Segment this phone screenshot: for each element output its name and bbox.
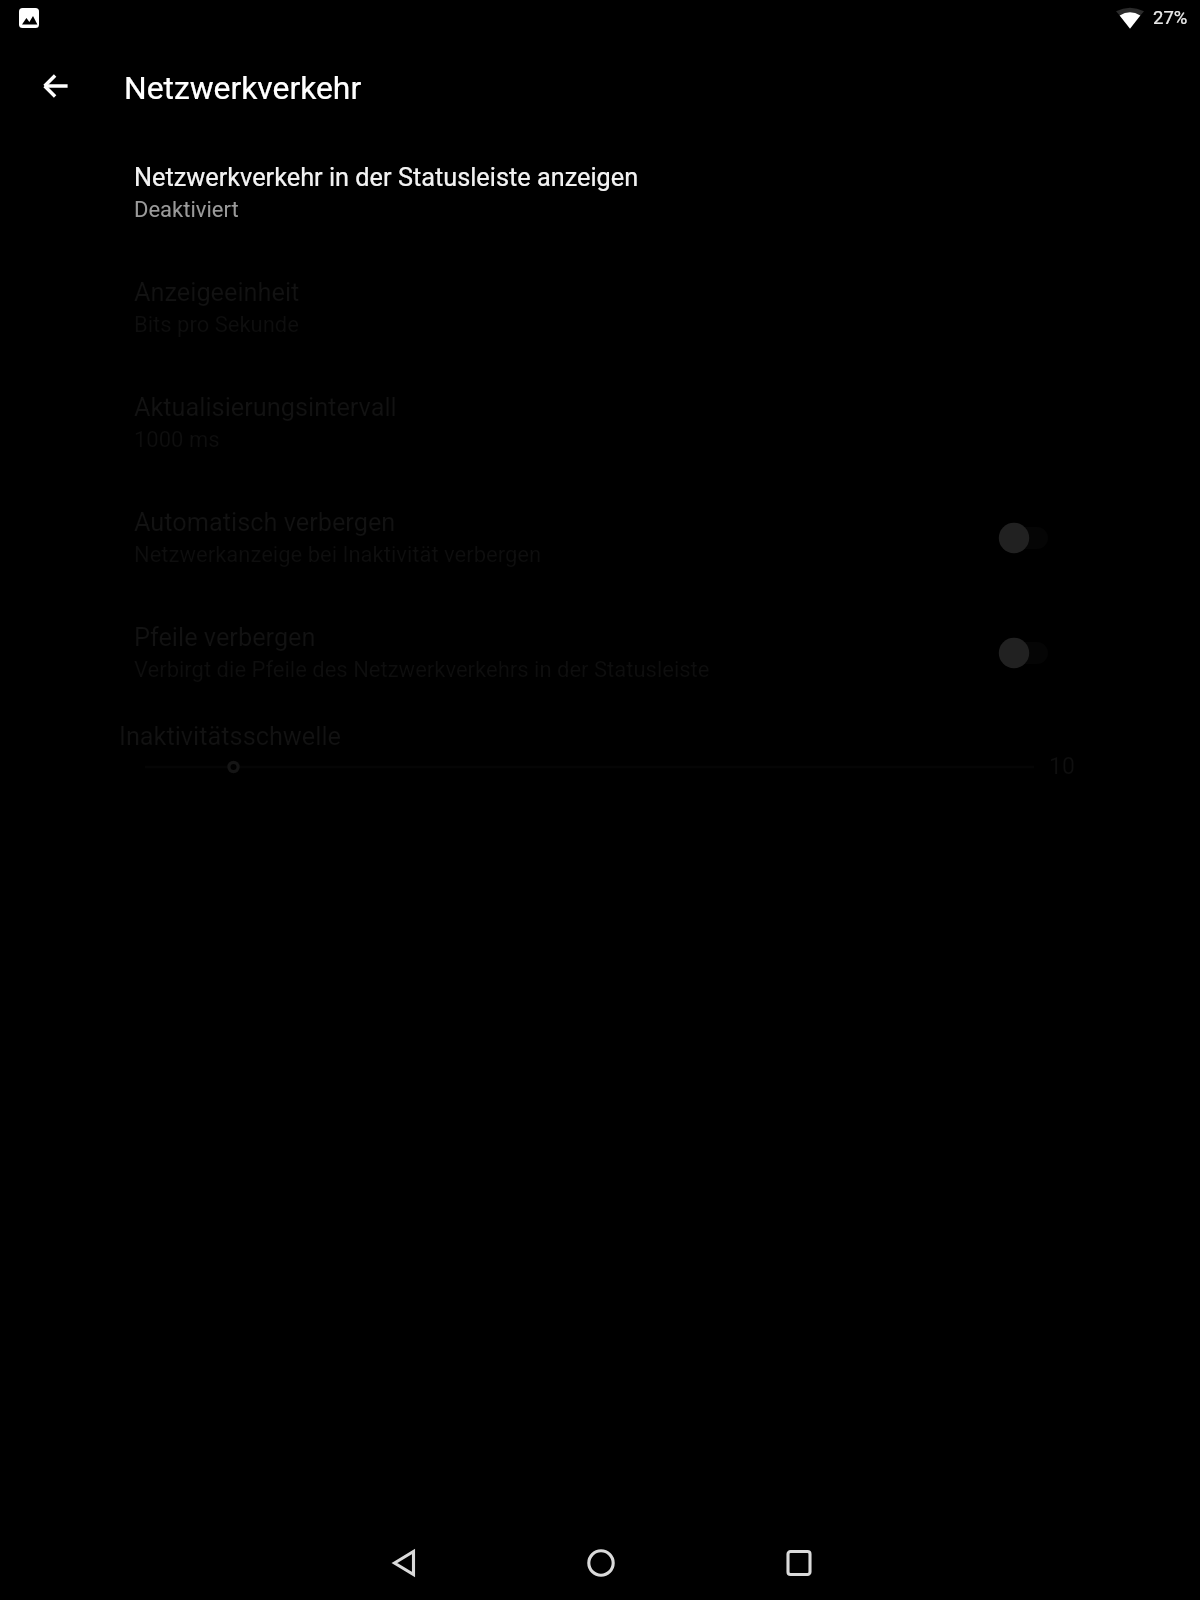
staticText: Netzwerkverkehr bbox=[124, 69, 362, 106]
staticText: Deaktiviert bbox=[134, 197, 239, 223]
staticText: Inaktivitätsschwelle bbox=[119, 722, 342, 752]
staticText: 10 bbox=[1049, 753, 1075, 780]
button[interactable]: Pfeile verbergen bbox=[0, 614, 1200, 729]
staticText: Anzeigeeinheit bbox=[134, 278, 300, 308]
staticText: Netzwerkanzeige bei Inaktivität verberge… bbox=[134, 542, 542, 568]
staticText: Automatisch verbergen bbox=[134, 508, 396, 538]
staticText: Pfeile verbergen bbox=[134, 623, 316, 653]
staticText: Netzwerkverkehr in der Statusleiste anze… bbox=[134, 163, 639, 193]
staticText: Verbirgt die Pfeile des Netzwerkverkehrs… bbox=[134, 657, 710, 683]
staticText: 27% bbox=[1153, 7, 1188, 29]
staticText: 1000 ms bbox=[134, 427, 220, 453]
button[interactable]: Home bbox=[571, 1533, 631, 1593]
button[interactable]: Toggle bbox=[980, 623, 1070, 683]
button[interactable]: Back bbox=[26, 56, 86, 116]
button[interactable]: Toggle bbox=[980, 508, 1070, 568]
button[interactable]: Back bbox=[374, 1533, 434, 1593]
button[interactable]: Automatisch verbergen bbox=[0, 499, 1200, 614]
button[interactable]: Netzwerkverkehr in der Statusleiste anze… bbox=[0, 154, 1200, 269]
button[interactable]: Recent apps bbox=[769, 1533, 829, 1593]
staticText: Aktualisierungsintervall bbox=[134, 393, 397, 423]
staticText: Bits pro Sekunde bbox=[134, 312, 299, 338]
